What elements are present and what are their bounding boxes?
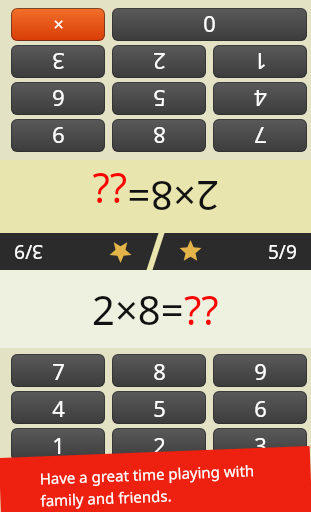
button[interactable]: 9 xyxy=(11,119,105,152)
button[interactable]: 5 xyxy=(112,391,206,424)
staticText: 3 xyxy=(52,47,65,77)
staticText: 6 xyxy=(254,393,267,423)
staticText: family and friends. xyxy=(40,485,173,510)
button[interactable]: 3 xyxy=(213,428,307,461)
button[interactable]: 6 xyxy=(213,391,307,424)
button[interactable]: 3 xyxy=(11,45,105,78)
staticText: 4 xyxy=(254,84,267,114)
button[interactable]: × xyxy=(213,465,307,498)
staticText: 5 xyxy=(153,84,166,114)
button[interactable]: × xyxy=(11,8,105,41)
staticText: ?? xyxy=(184,282,219,336)
staticText: 3 xyxy=(254,430,267,460)
staticText: 4 xyxy=(52,393,65,423)
button[interactable]: 1 xyxy=(11,428,105,461)
staticText: 5 xyxy=(153,393,166,423)
button[interactable]: 8 xyxy=(112,354,206,387)
button[interactable]: 2×8= xyxy=(0,270,311,348)
button[interactable]: 1 xyxy=(213,45,307,78)
staticText: 9 xyxy=(254,356,267,386)
staticText: 1 xyxy=(52,430,65,460)
staticText: 2 xyxy=(153,47,166,77)
staticText: Have a great time playing with xyxy=(39,460,255,488)
staticText: 3/9 xyxy=(14,239,43,265)
button[interactable]: 0 xyxy=(11,465,206,498)
staticText: 8 xyxy=(153,356,166,386)
staticText: 0 xyxy=(102,467,115,497)
staticText: 5/9 xyxy=(268,239,297,265)
staticText: 9 xyxy=(52,121,65,151)
button[interactable]: 8 xyxy=(112,119,206,152)
button[interactable]: 5/9 xyxy=(173,233,297,270)
button[interactable]: 4 xyxy=(11,391,105,424)
staticText: 6 xyxy=(52,84,65,114)
button[interactable]: 2 xyxy=(112,428,206,461)
button[interactable]: 3/9 xyxy=(14,233,138,270)
staticText: 2 xyxy=(153,430,166,460)
button[interactable]: 6 xyxy=(11,82,105,115)
staticText: 0 xyxy=(203,10,216,40)
staticText: 8 xyxy=(153,121,166,151)
button[interactable]: 0 xyxy=(112,8,307,41)
staticText: 2×8= xyxy=(127,170,219,224)
button[interactable]: 9 xyxy=(213,354,307,387)
staticText: 7 xyxy=(52,356,65,386)
button[interactable]: 7 xyxy=(11,354,105,387)
staticText: × xyxy=(53,12,64,37)
staticText: ¿¿ xyxy=(92,170,127,224)
staticText: 1 xyxy=(254,47,267,77)
button[interactable]: 4 xyxy=(213,82,307,115)
button[interactable]: 2×8= xyxy=(0,160,311,233)
staticText: 2×8= xyxy=(92,282,184,336)
button[interactable]: Have a great time playing with xyxy=(0,446,311,512)
button[interactable]: 5 xyxy=(112,82,206,115)
button[interactable]: 7 xyxy=(213,119,307,152)
button[interactable]: 2 xyxy=(112,45,206,78)
staticText: 7 xyxy=(254,121,267,151)
